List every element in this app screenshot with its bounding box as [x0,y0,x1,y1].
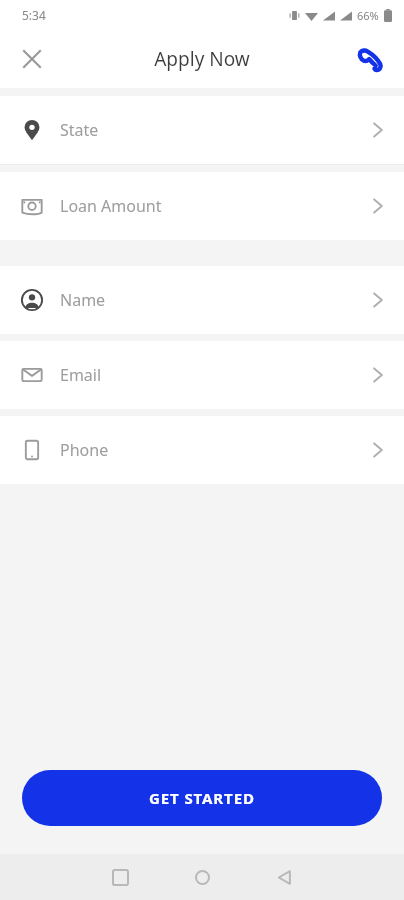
button[interactable]: GET STARTED [22,770,382,826]
button[interactable]: Close [10,37,54,81]
staticText: 66% [357,8,379,23]
staticText: GET STARTED [149,788,255,808]
button[interactable]: Home [161,854,243,900]
button[interactable]: Name [0,266,404,334]
button[interactable]: Back [243,854,325,900]
button[interactable]: Email [0,341,404,409]
staticText: Loan Amount [60,195,372,217]
staticText: State [60,119,372,141]
button[interactable]: Phone [0,416,404,484]
button[interactable]: Loan Amount [0,172,404,240]
staticText: Name [60,289,372,311]
staticText: 5:34 [22,7,46,23]
button[interactable]: Call [348,37,392,81]
staticText: Email [60,364,372,386]
staticText: Apply Now [154,46,250,72]
button[interactable]: Recent apps [79,854,161,900]
staticText: Phone [60,439,372,461]
button[interactable]: State [0,96,404,164]
